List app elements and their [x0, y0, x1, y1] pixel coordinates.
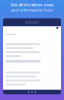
staticText: Get all the latest news	[10, 2, 53, 7]
staticText: and information here	[11, 7, 53, 13]
